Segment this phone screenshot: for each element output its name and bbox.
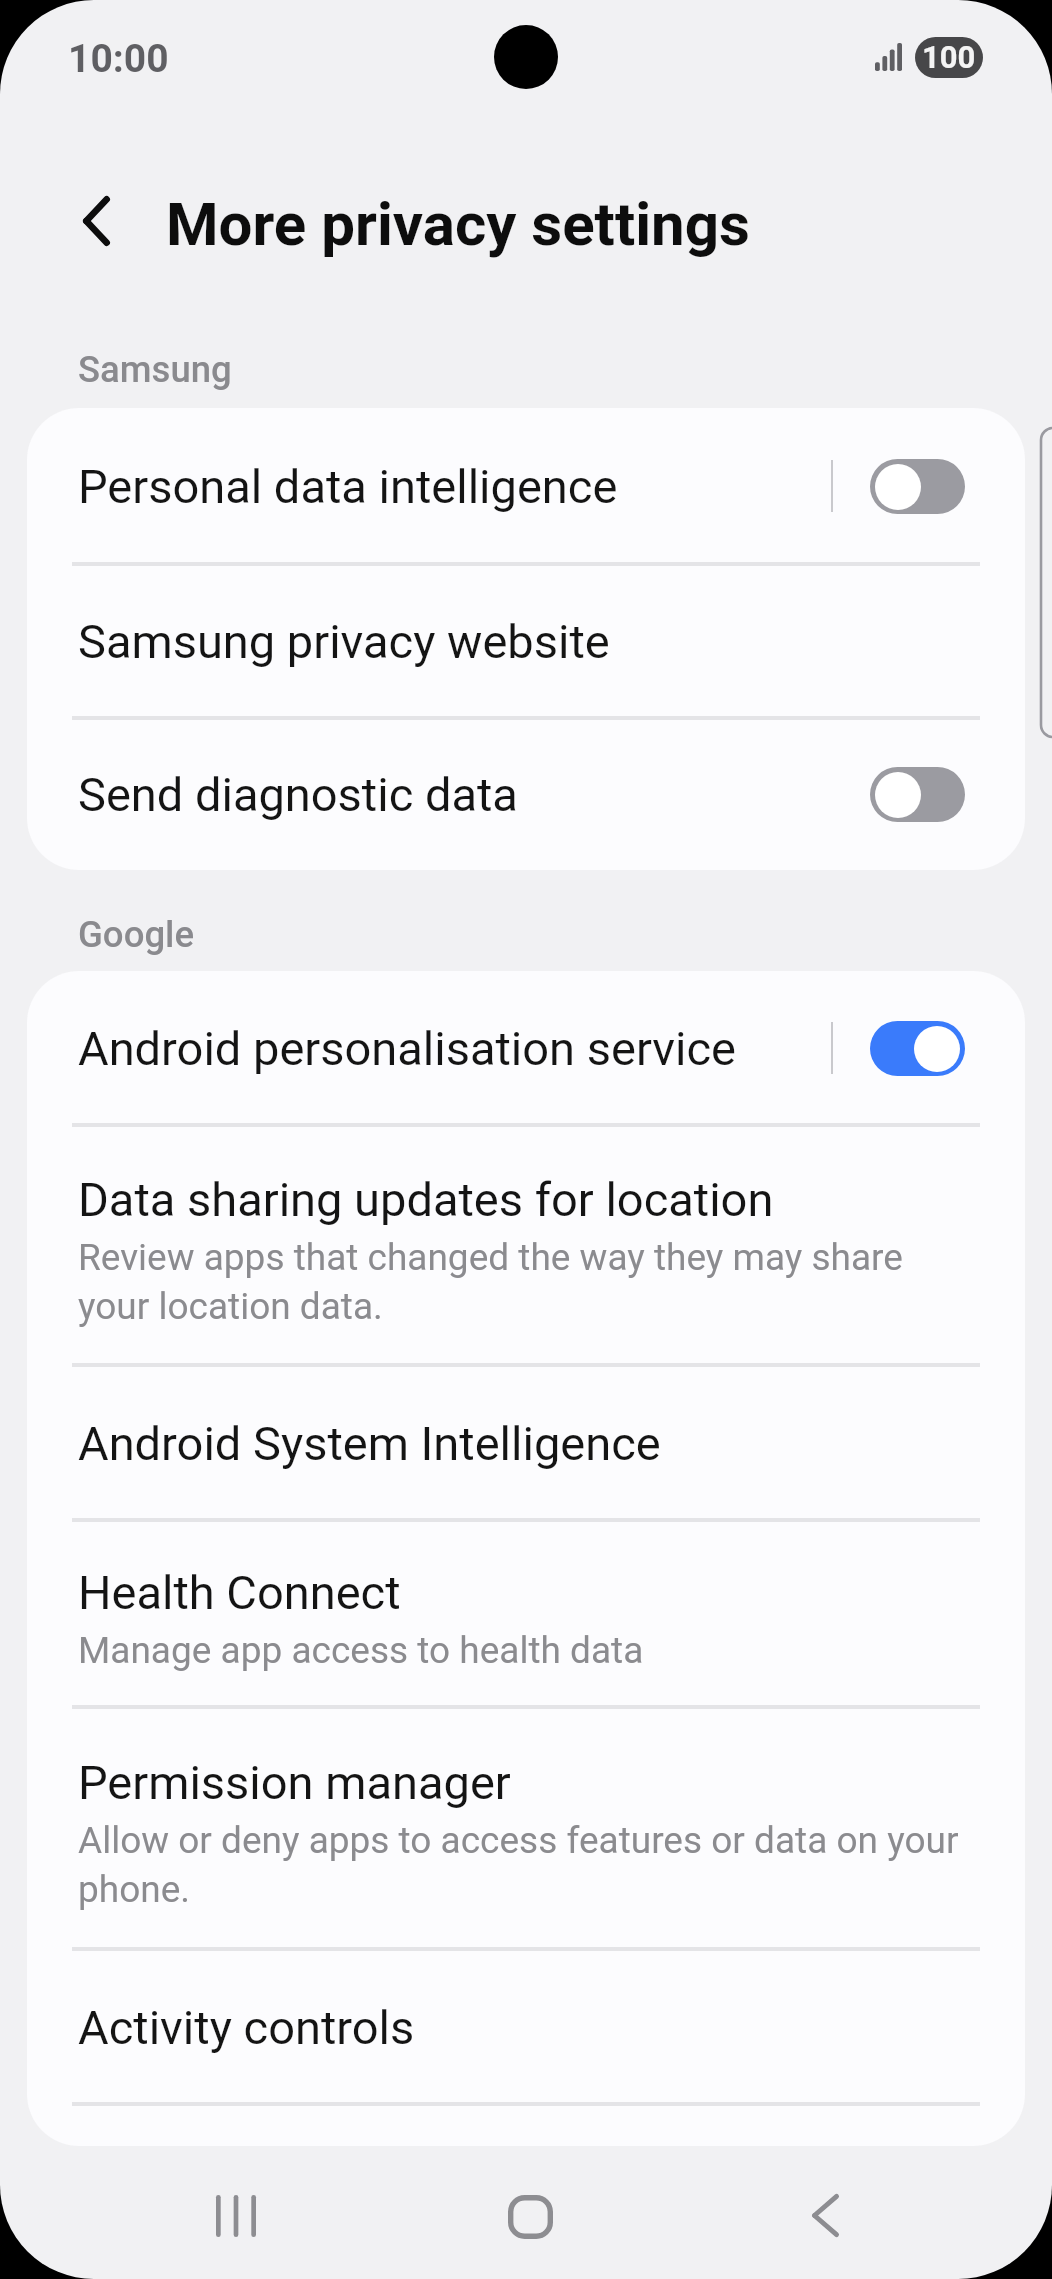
- button[interactable]: Activity controls: [27, 1949, 1025, 2104]
- button[interactable]: Android personalisation service: [27, 971, 1025, 1125]
- staticText: Allow or deny apps to access features or…: [78, 1814, 969, 1912]
- button[interactable]: Toggle off: [870, 767, 965, 822]
- staticText: Personal data intelligence: [78, 457, 618, 515]
- staticText: Send diagnostic data: [78, 765, 518, 823]
- staticText: Samsung privacy website: [78, 612, 610, 670]
- button[interactable]: Toggle off: [870, 459, 965, 514]
- staticText: Android personalisation service: [78, 1019, 736, 1077]
- button[interactable]: Android System Intelligence: [27, 1365, 1025, 1520]
- staticText: Permission manager: [78, 1753, 511, 1811]
- staticText: Health Connect: [78, 1563, 401, 1621]
- button[interactable]: Personal data intelligence: [27, 408, 1025, 564]
- staticText: Data sharing updates for location: [78, 1170, 774, 1228]
- staticText: More privacy settings: [166, 186, 750, 260]
- staticText: 100: [922, 41, 976, 75]
- staticText: 10:00: [68, 36, 169, 82]
- button[interactable]: Samsung privacy website: [27, 564, 1025, 718]
- button[interactable]: Data sharing updates for location: [27, 1125, 1025, 1365]
- staticText: Review apps that changed the way they ma…: [78, 1231, 969, 1329]
- button[interactable]: Permission manager: [27, 1707, 1025, 1949]
- staticText: Manage app access to health data: [78, 1624, 644, 1673]
- button[interactable]: Home: [443, 2150, 618, 2279]
- button[interactable]: Health Connect: [27, 1520, 1025, 1707]
- button[interactable]: Recent apps: [148, 2150, 323, 2279]
- staticText: Activity controls: [78, 1998, 415, 2056]
- staticText: Android System Intelligence: [78, 1414, 661, 1472]
- staticText: Google: [78, 912, 195, 956]
- button[interactable]: Send diagnostic data: [27, 718, 1025, 870]
- button[interactable]: Back: [738, 2150, 913, 2279]
- staticText: Samsung: [78, 347, 232, 391]
- button[interactable]: Navigate up: [55, 180, 137, 262]
- button[interactable]: Toggle on: [870, 1021, 965, 1076]
